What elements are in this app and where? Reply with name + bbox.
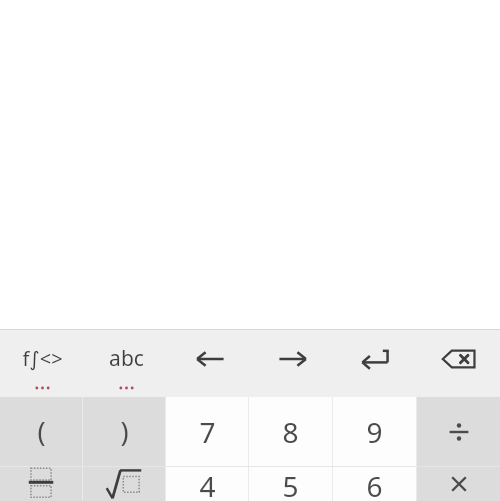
- staticText: f∫<>: [22, 345, 63, 372]
- button[interactable]: Multiply: [417, 467, 500, 501]
- button[interactable]: Square root: [83, 467, 165, 501]
- staticText: 8: [282, 413, 299, 451]
- button[interactable]: Functions: [0, 330, 84, 397]
- button[interactable]: 9: [333, 397, 416, 466]
- staticText: 6: [366, 467, 383, 501]
- button[interactable]: (: [0, 397, 82, 466]
- button[interactable]: Backspace: [417, 330, 500, 397]
- staticText: (: [37, 413, 46, 450]
- staticText: abc: [109, 344, 144, 373]
- button[interactable]: Move left: [168, 330, 251, 397]
- button[interactable]: Move right: [251, 330, 334, 397]
- button[interactable]: Enter: [334, 330, 417, 397]
- button[interactable]: 7: [166, 397, 248, 466]
- staticText: 4: [199, 467, 216, 501]
- button[interactable]: Divide: [417, 397, 500, 466]
- button[interactable]: Letters: [84, 330, 168, 397]
- staticText: 7: [199, 413, 216, 451]
- button[interactable]: 8: [249, 397, 332, 466]
- staticText: 9: [366, 413, 383, 451]
- button[interactable]: 4: [166, 467, 248, 501]
- button[interactable]: 6: [333, 467, 416, 501]
- staticText: ): [120, 413, 129, 450]
- staticText: 5: [282, 467, 299, 501]
- button[interactable]: Fraction: [0, 467, 82, 501]
- button[interactable]: 5: [249, 467, 332, 501]
- button[interactable]: ): [83, 397, 165, 466]
